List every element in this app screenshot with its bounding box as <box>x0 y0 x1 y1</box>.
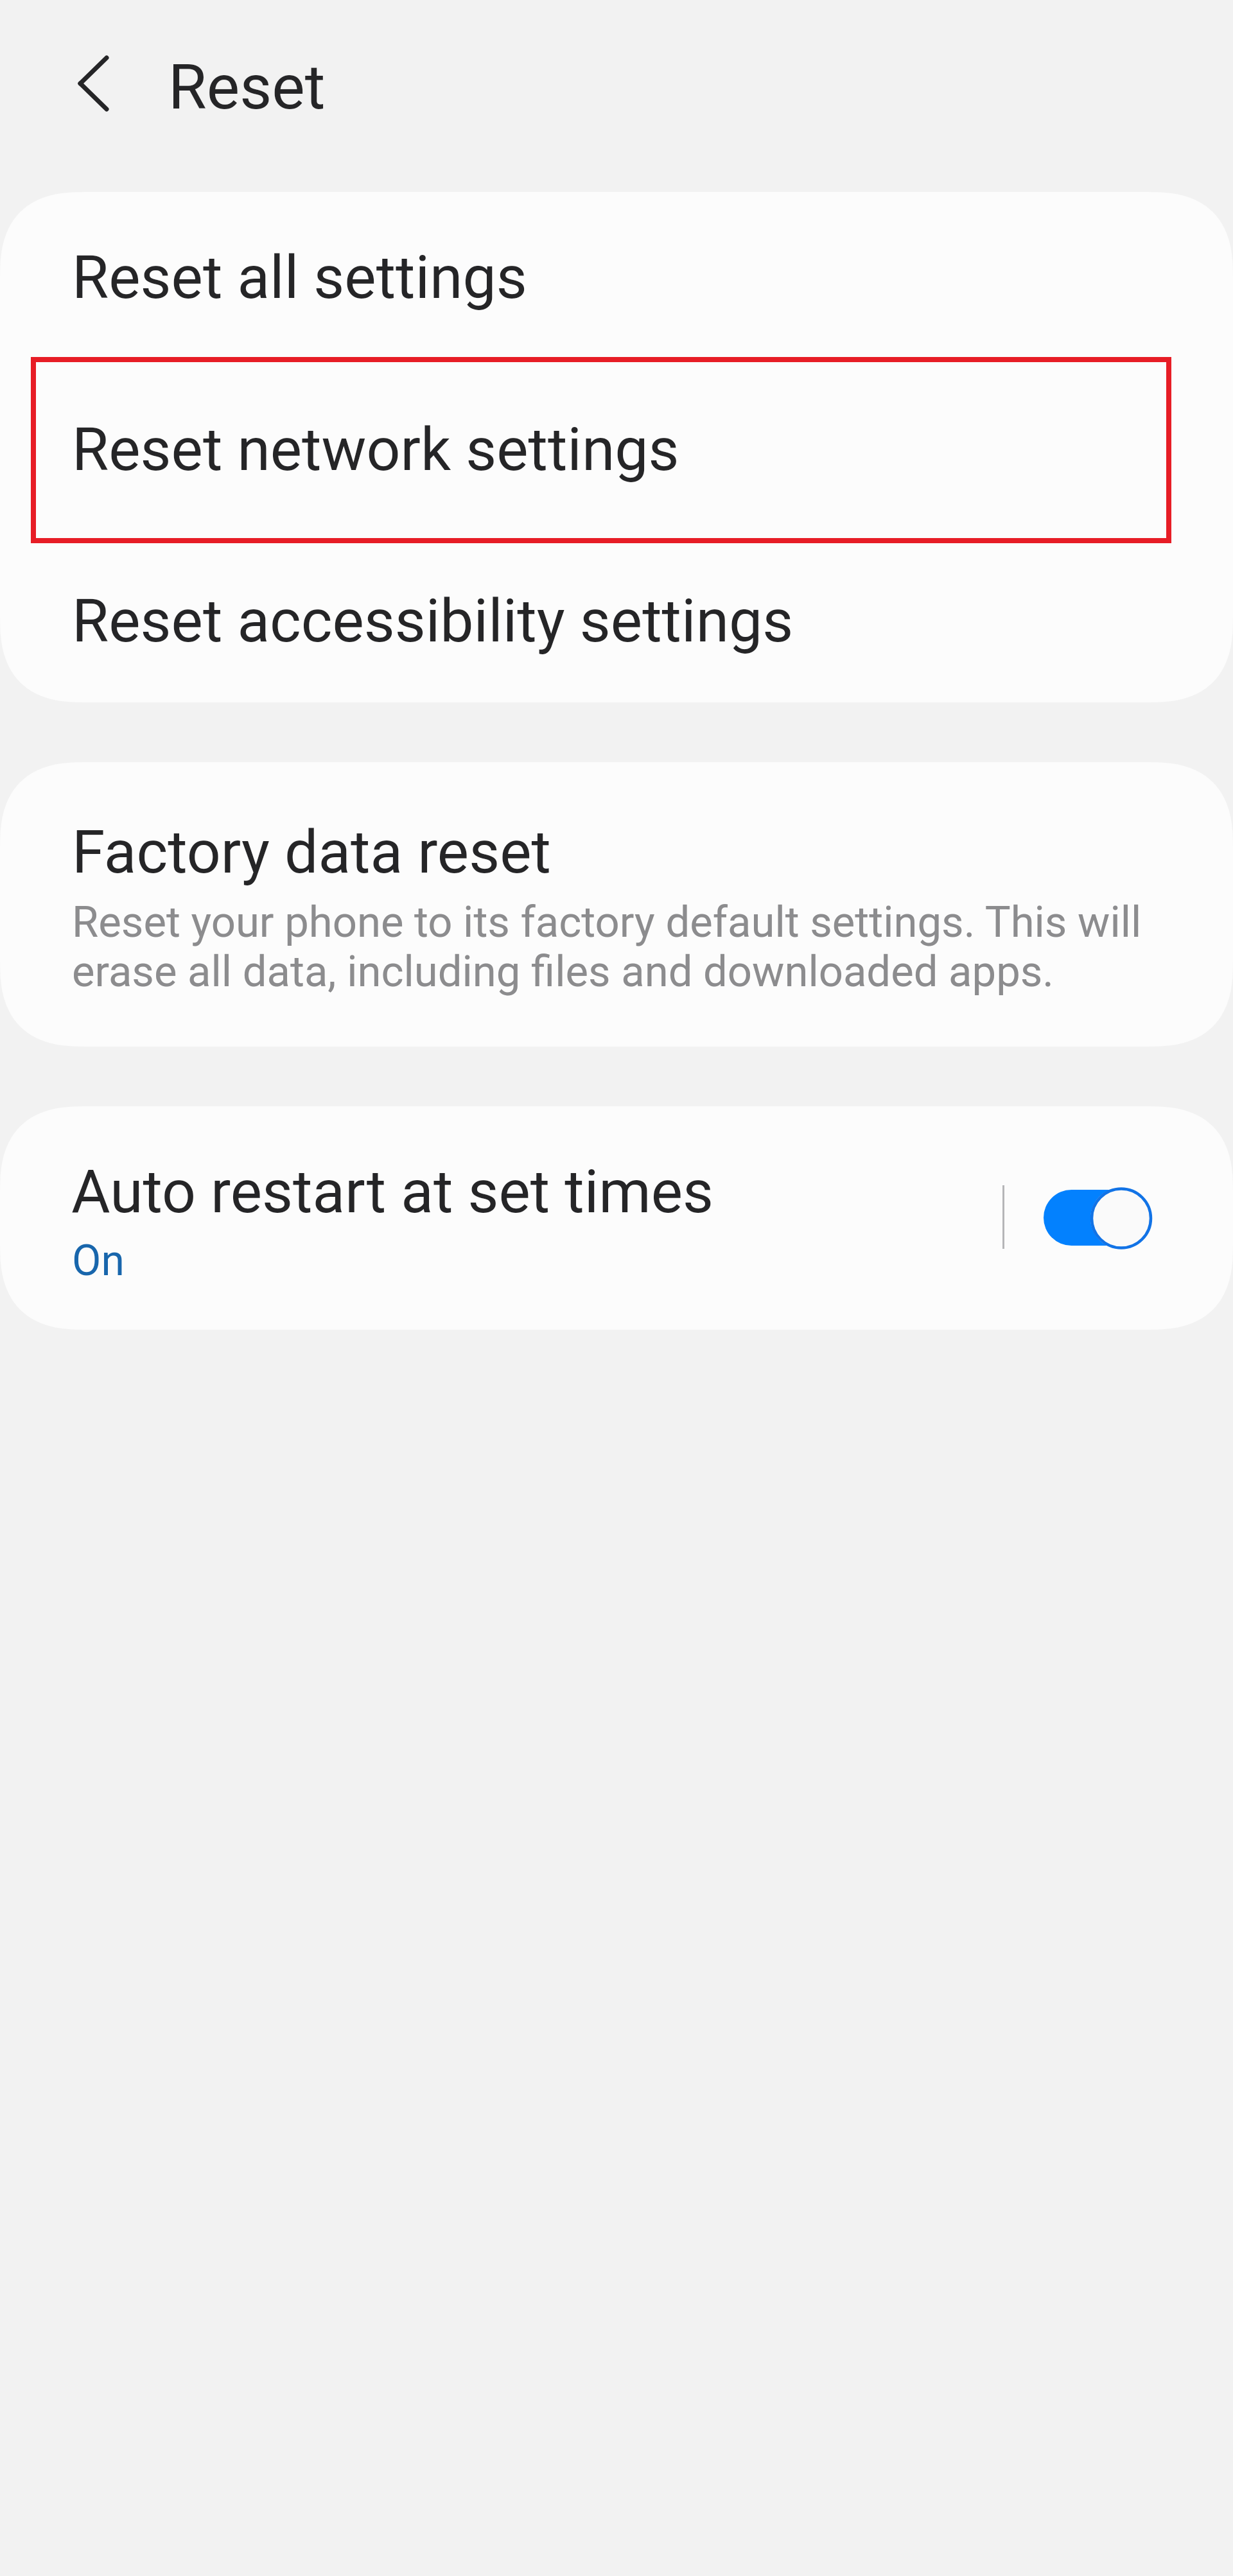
staticText: Auto restart at set times <box>71 1157 714 1227</box>
staticText: Reset network settings <box>72 415 679 485</box>
staticText: On <box>72 1236 125 1285</box>
staticText: Reset your phone to its factory default … <box>72 898 1164 996</box>
staticText: Reset accessibility settings <box>72 586 794 656</box>
button[interactable]: Auto restart at set times <box>0 1106 1233 1330</box>
staticText: Reset <box>168 51 326 124</box>
button[interactable]: Factory data reset <box>0 762 1233 1047</box>
staticText: Factory data reset <box>72 817 551 887</box>
button[interactable]: Reset accessibility settings <box>0 532 1233 702</box>
button[interactable]: Reset network settings <box>0 362 1233 532</box>
button[interactable]: Reset all settings <box>0 192 1233 362</box>
staticText: Reset all settings <box>72 243 527 313</box>
button[interactable]: Navigate up <box>39 42 121 125</box>
button[interactable]: Auto restart at set times, on <box>1027 1146 1166 1284</box>
